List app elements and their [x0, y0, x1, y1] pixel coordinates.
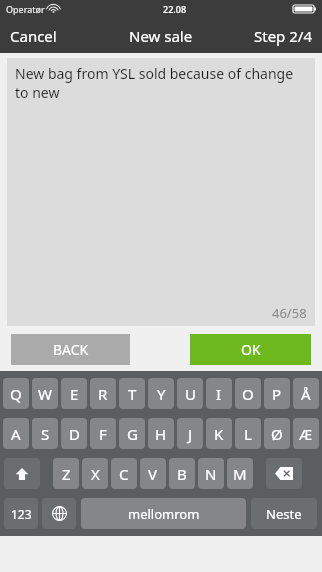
button[interactable]: BACK: [11, 334, 130, 365]
button[interactable]: V: [140, 458, 166, 489]
staticText: Q: [10, 384, 22, 404]
staticText: V: [148, 464, 158, 484]
staticText: G: [127, 424, 138, 444]
staticText: F: [99, 424, 107, 444]
button[interactable]: P: [264, 378, 290, 409]
button[interactable]: Æ: [293, 418, 319, 449]
button[interactable]: Change keyboard: [42, 498, 76, 529]
button[interactable]: W: [32, 378, 58, 409]
staticText: Z: [62, 464, 71, 484]
button[interactable]: T: [119, 378, 145, 409]
button[interactable]: R: [90, 378, 116, 409]
staticText: R: [98, 384, 108, 404]
staticText: BACK: [53, 340, 89, 359]
staticText: B: [177, 464, 187, 484]
staticText: 123: [11, 506, 32, 522]
button[interactable]: S: [32, 418, 58, 449]
button[interactable]: D: [61, 418, 87, 449]
staticText: A: [11, 424, 21, 444]
button[interactable]: M: [227, 458, 253, 489]
staticText: 22.08: [163, 3, 187, 15]
button[interactable]: U: [177, 378, 203, 409]
staticText: L: [244, 424, 252, 444]
button[interactable]: L: [235, 418, 261, 449]
staticText: P: [272, 384, 282, 404]
staticText: Neste: [266, 505, 302, 523]
staticText: Æ: [299, 424, 313, 444]
button[interactable]: A: [3, 418, 29, 449]
staticText: J: [188, 424, 193, 444]
button[interactable]: Cancel: [6, 20, 61, 52]
button[interactable]: J: [177, 418, 203, 449]
staticText: S: [41, 424, 50, 444]
button[interactable]: Neste: [251, 498, 317, 529]
staticText: C: [119, 464, 129, 484]
button[interactable]: 123: [4, 498, 38, 529]
staticText: Å: [301, 384, 311, 404]
button[interactable]: I: [206, 378, 232, 409]
button[interactable]: N: [198, 458, 224, 489]
button[interactable]: Z: [53, 458, 79, 489]
button[interactable]: H: [148, 418, 174, 449]
staticText: New bag from YSL sold because of change …: [15, 64, 301, 102]
button[interactable]: K: [206, 418, 232, 449]
button[interactable]: Q: [3, 378, 29, 409]
staticText: D: [69, 424, 80, 444]
button[interactable]: O: [235, 378, 261, 409]
button[interactable]: OK: [190, 334, 311, 365]
button[interactable]: New bag from YSL sold because of change …: [7, 58, 315, 326]
button[interactable]: Shift: [4, 458, 40, 489]
staticText: Y: [157, 384, 166, 404]
staticText: K: [214, 424, 224, 444]
staticText: E: [70, 384, 79, 404]
staticText: W: [38, 384, 52, 404]
button[interactable]: Backspace: [266, 458, 302, 489]
button[interactable]: G: [119, 418, 145, 449]
button[interactable]: E: [61, 378, 87, 409]
staticText: N: [205, 464, 217, 484]
button[interactable]: Step 2/4: [250, 20, 316, 52]
staticText: Cancel: [10, 26, 57, 46]
button[interactable]: Y: [148, 378, 174, 409]
button[interactable]: Å: [293, 378, 319, 409]
staticText: M: [233, 464, 247, 484]
button[interactable]: F: [90, 418, 116, 449]
staticText: mellomrom: [128, 505, 200, 523]
staticText: O: [242, 384, 254, 404]
staticText: Step 2/4: [254, 26, 312, 46]
staticText: U: [185, 384, 196, 404]
button[interactable]: B: [169, 458, 195, 489]
button[interactable]: C: [111, 458, 137, 489]
staticText: OK: [241, 340, 261, 359]
button[interactable]: mellomrom: [81, 498, 246, 529]
staticText: New sale: [129, 26, 193, 46]
staticText: I: [216, 384, 222, 404]
staticText: H: [155, 424, 167, 444]
staticText: Ø: [271, 424, 283, 444]
button[interactable]: X: [82, 458, 108, 489]
staticText: T: [128, 384, 137, 404]
staticText: Operatør: [6, 3, 45, 15]
staticText: X: [91, 464, 100, 484]
staticText: 46/58: [272, 304, 307, 322]
button[interactable]: Ø: [264, 418, 290, 449]
